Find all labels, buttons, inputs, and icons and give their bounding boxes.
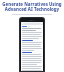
button[interactable]: Generate Narratives Using Advanced AI Te… [2, 1, 62, 12]
button[interactable] [22, 26, 30, 27]
button[interactable]: Phone preview of AI article [20, 18, 44, 71]
staticText: Generate Narratives Using Advanced AI Te… [2, 1, 62, 12]
button[interactable]: Address bar [21, 22, 43, 25]
